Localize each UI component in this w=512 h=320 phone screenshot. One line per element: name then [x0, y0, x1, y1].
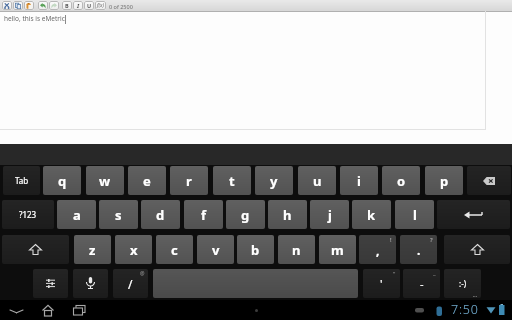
staticText: g — [241, 206, 250, 224]
staticText: h — [283, 206, 292, 224]
staticText: :-) — [459, 278, 467, 289]
staticText: ? — [430, 236, 433, 244]
button[interactable]: q — [43, 166, 81, 195]
staticText: z — [89, 241, 96, 259]
button[interactable]: U — [84, 1, 94, 10]
staticText: U — [87, 2, 92, 9]
button[interactable]: Tab — [3, 166, 40, 195]
button[interactable] — [467, 166, 511, 195]
button[interactable]: . — [400, 235, 437, 264]
button[interactable] — [24, 1, 34, 10]
button[interactable]: s — [99, 200, 138, 229]
button[interactable]: ?123 — [2, 200, 54, 229]
button[interactable]: i — [340, 166, 378, 195]
staticText: _ — [433, 269, 436, 277]
button[interactable]: h — [268, 200, 307, 229]
button[interactable]: z — [74, 235, 111, 264]
staticText: o — [397, 172, 406, 190]
staticText: k — [367, 206, 376, 224]
button[interactable]: x — [115, 235, 152, 264]
staticText: c — [171, 241, 178, 259]
button[interactable]: w — [86, 166, 124, 195]
staticText: hello, this is eMetric. — [4, 14, 67, 23]
button[interactable] — [444, 235, 510, 264]
staticText: , — [376, 242, 380, 258]
staticText: ... — [473, 292, 478, 298]
button[interactable] — [2, 1, 12, 10]
staticText: @ — [140, 270, 145, 277]
button[interactable]: , — [359, 235, 396, 264]
button[interactable]: r — [170, 166, 208, 195]
button[interactable]: k — [352, 200, 391, 229]
staticText: s — [115, 206, 122, 224]
staticText: . — [417, 242, 421, 258]
button[interactable]: a — [57, 200, 96, 229]
button[interactable] — [49, 1, 59, 10]
staticText: v — [212, 241, 220, 259]
staticText: f — [201, 206, 207, 224]
button[interactable]: d — [141, 200, 180, 229]
button[interactable]: / — [113, 269, 148, 298]
staticText: l — [413, 206, 417, 224]
button[interactable]: p — [425, 166, 463, 195]
button[interactable]: 7:50 — [451, 301, 479, 318]
staticText: ! — [390, 236, 392, 244]
button[interactable]: t — [213, 166, 251, 195]
staticText: - — [420, 276, 424, 291]
staticText: t — [229, 172, 235, 190]
staticText: I — [77, 2, 80, 9]
button[interactable]: n — [278, 235, 315, 264]
button[interactable] — [73, 269, 108, 298]
button[interactable] — [13, 1, 23, 10]
button[interactable]: m — [319, 235, 356, 264]
button[interactable]: o — [382, 166, 420, 195]
button[interactable]: B — [62, 1, 72, 10]
staticText: r — [186, 172, 192, 190]
staticText: ' — [380, 276, 383, 291]
staticText: w — [99, 172, 111, 190]
button[interactable]: c — [156, 235, 193, 264]
button[interactable]: I — [73, 1, 83, 10]
staticText: d — [156, 206, 165, 224]
button[interactable]: y — [255, 166, 293, 195]
button[interactable] — [71, 303, 89, 317]
staticText: 0 of 2500 — [109, 3, 133, 10]
button[interactable]: f — [184, 200, 223, 229]
button[interactable]: e — [128, 166, 166, 195]
staticText: B — [65, 2, 69, 9]
staticText: e — [143, 172, 151, 190]
button[interactable]: l — [395, 200, 434, 229]
staticText: m — [331, 241, 344, 259]
button[interactable]: g — [226, 200, 265, 229]
staticText: p — [440, 172, 449, 190]
staticText: Tab — [15, 175, 29, 186]
button[interactable] — [153, 269, 358, 298]
staticText: y — [270, 172, 278, 190]
button[interactable]: u — [298, 166, 336, 195]
button[interactable]: ' — [363, 269, 400, 298]
button[interactable] — [40, 303, 56, 317]
button[interactable] — [6, 303, 32, 317]
staticText: a — [73, 206, 81, 224]
staticText: " — [393, 270, 396, 278]
staticText: u — [313, 172, 322, 190]
button[interactable] — [437, 200, 510, 229]
button[interactable]: j — [310, 200, 349, 229]
button[interactable]: b — [237, 235, 274, 264]
staticText: / — [128, 276, 133, 292]
button[interactable]: :-) — [444, 269, 481, 298]
staticText: q — [58, 172, 67, 190]
staticText: f(x) — [97, 2, 104, 9]
button[interactable] — [2, 235, 69, 264]
button[interactable] — [33, 269, 68, 298]
staticText: x — [130, 241, 138, 259]
staticText: b — [251, 241, 260, 259]
button[interactable] — [38, 1, 48, 10]
button[interactable]: v — [197, 235, 234, 264]
staticText: i — [357, 172, 361, 190]
button[interactable]: - — [403, 269, 440, 298]
staticText: n — [292, 241, 301, 259]
staticText: j — [328, 206, 332, 224]
button[interactable]: f(x) — [95, 1, 106, 10]
